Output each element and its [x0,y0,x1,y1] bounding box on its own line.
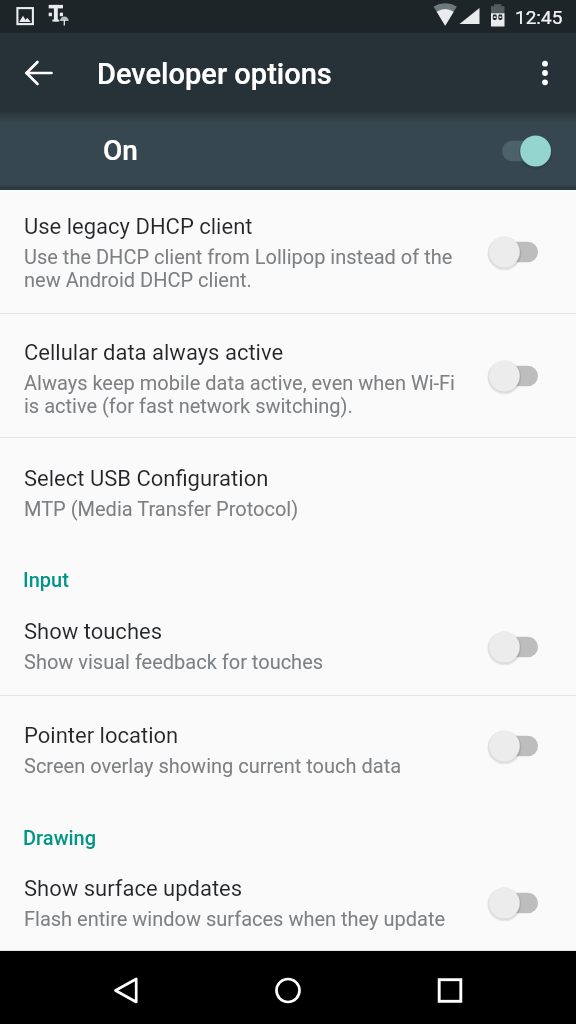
button[interactable]: On [0,112,576,190]
staticText: Show surface updates [24,876,243,902]
button[interactable]: Select USB Configuration [0,438,576,538]
staticText: Use legacy DHCP client [24,214,253,240]
staticText: Use the DHCP client from Lollipop instea… [24,246,453,292]
button[interactable]: Show touches [0,599,576,695]
button[interactable]: Pointer location [0,696,576,796]
staticText: Cellular data always active [24,340,284,366]
button[interactable]: Home [252,951,324,1024]
button[interactable]: Navigate up [0,33,77,112]
button[interactable]: Use legacy DHCP client [0,190,576,313]
button[interactable]: Recent apps [414,951,486,1024]
staticText: Select USB Configuration [24,466,269,492]
staticText: Show touches [24,619,163,645]
button[interactable]: Back [90,951,162,1024]
staticText: Show visual feedback for touches [24,651,324,674]
staticText: Flash entire window surfaces when they u… [24,908,446,931]
staticText: Screen overlay showing current touch dat… [24,755,402,778]
button[interactable]: More options [514,33,576,112]
staticText: Pointer location [24,723,179,749]
staticText: 12:45 [515,6,563,28]
button[interactable]: Show surface updates [0,857,576,948]
staticText: Always keep mobile data active, even whe… [24,372,455,418]
button[interactable]: Cellular data always active [0,314,576,437]
staticText: Input [23,568,69,591]
staticText: Drawing [23,826,97,849]
staticText: On [103,134,138,167]
staticText: Developer options [97,57,332,91]
staticText: MTP (Media Transfer Protocol) [24,498,299,521]
